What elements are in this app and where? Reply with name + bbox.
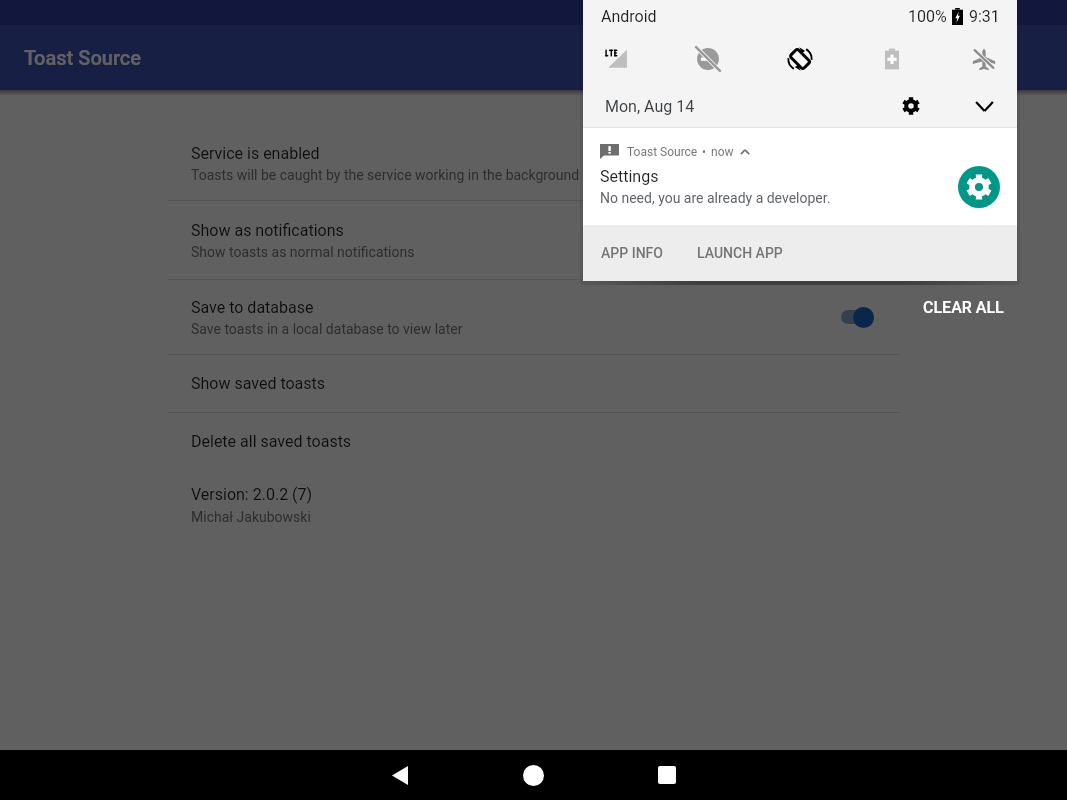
staticText: Toast Source <box>627 145 698 159</box>
button[interactable]: Recent apps <box>637 750 697 800</box>
button[interactable]: Mobile data LTE <box>589 33 641 85</box>
staticText: Show saved toasts <box>191 374 326 393</box>
staticText: now <box>711 145 734 159</box>
button[interactable]: Delete all saved toasts <box>167 413 900 470</box>
button[interactable]: Expand quick settings <box>966 88 1002 124</box>
staticText: Mon, Aug 14 <box>605 97 695 116</box>
button[interactable]: Show as notifications <box>167 201 900 279</box>
staticText: Android <box>601 7 657 26</box>
staticText: Toasts will be caught by the service wor… <box>191 167 580 183</box>
button[interactable]: CLEAR ALL <box>909 288 1018 327</box>
staticText: Delete all saved toasts <box>191 432 352 451</box>
staticText: LAUNCH APP <box>697 245 783 261</box>
staticText: APP INFO <box>601 245 663 261</box>
button[interactable]: Show saved toasts <box>167 355 900 412</box>
button[interactable]: Home <box>503 750 563 800</box>
button[interactable]: Airplane mode <box>958 33 1010 85</box>
button[interactable]: Battery saver <box>866 33 918 85</box>
staticText: Michał Jakubowski <box>191 509 311 525</box>
staticText: Service is enabled <box>191 144 320 163</box>
staticText: Save to database <box>191 298 314 317</box>
staticText: Toast Source <box>24 46 141 69</box>
button[interactable]: Save to database <box>167 280 900 354</box>
staticText: Version: 2.0.2 (7) <box>191 485 313 504</box>
button[interactable]: Toast Source <box>583 128 1017 225</box>
staticText: No need, you are already a developer. <box>600 190 831 206</box>
staticText: CLEAR ALL <box>923 298 1004 317</box>
staticText: 9:31 <box>969 7 1000 26</box>
button[interactable]: Service is enabled <box>167 127 900 200</box>
staticText: Show toasts as normal notifications <box>191 244 415 260</box>
staticText: Settings <box>600 167 659 186</box>
staticText: • <box>702 145 707 159</box>
button[interactable]: Toast Source app icon <box>958 166 1000 208</box>
button[interactable]: APP INFO <box>590 235 674 271</box>
button[interactable]: Auto rotate <box>774 33 826 85</box>
button[interactable]: LAUNCH APP <box>686 235 794 271</box>
button[interactable]: Settings <box>893 88 929 124</box>
button[interactable]: Back <box>370 750 430 800</box>
staticText: Save toasts in a local database to view … <box>191 321 463 337</box>
button[interactable]: Do not disturb <box>682 33 734 85</box>
staticText: 100% <box>908 7 947 26</box>
button[interactable]: Save to database toggle <box>840 297 888 337</box>
staticText: Show as notifications <box>191 221 344 240</box>
